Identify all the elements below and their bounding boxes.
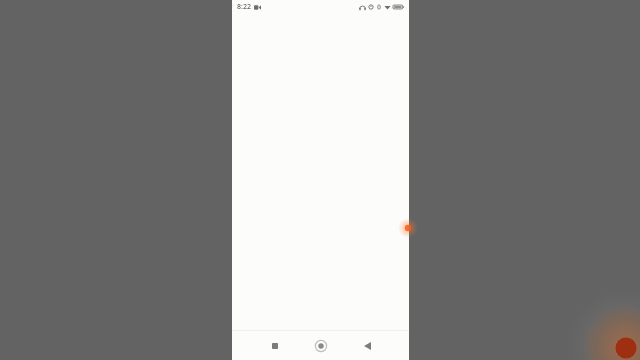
button[interactable]: Recent apps	[258, 331, 292, 360]
staticText: 8:22	[237, 2, 251, 12]
button[interactable]: Back	[350, 331, 384, 360]
button[interactable]: Home	[304, 331, 338, 360]
